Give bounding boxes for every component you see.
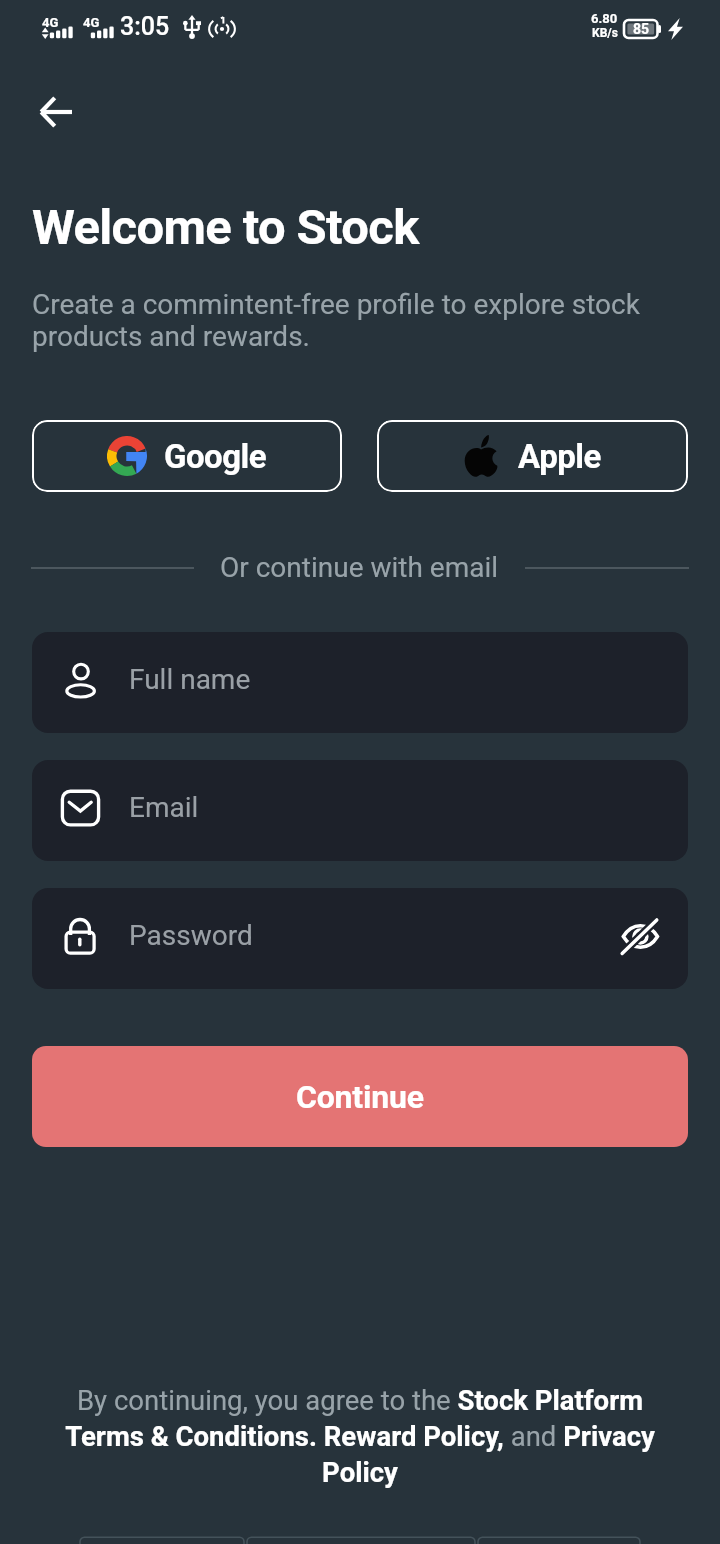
staticText: Password [129, 919, 253, 952]
button[interactable]: Back [24, 80, 88, 144]
button[interactable]: Show password [602, 901, 678, 977]
button[interactable]: Google [32, 420, 342, 492]
staticText: Google [164, 437, 267, 476]
staticText: Welcome to Stock [32, 199, 419, 256]
staticText: 4G [83, 15, 100, 30]
button[interactable]: Password [32, 888, 688, 989]
button[interactable]: Email [32, 760, 688, 861]
button[interactable]: Apple [377, 420, 688, 492]
staticText: Continue [296, 1078, 424, 1116]
staticText: Full name [129, 663, 251, 696]
staticText: KB/s [592, 26, 618, 40]
staticText: Apple [518, 437, 601, 476]
staticText: 6.80 [591, 11, 618, 26]
staticText: By continuing, you agree to the Stock Pl… [52, 1384, 668, 1488]
button[interactable]: Continue [32, 1046, 688, 1147]
button[interactable]: Full name [32, 632, 688, 733]
staticText: 3:05 [120, 12, 170, 41]
staticText: Create a commintent-free profile to expl… [32, 288, 657, 353]
staticText: 4G [42, 15, 59, 30]
staticText: Or continue with email [220, 551, 499, 584]
staticText: Email [129, 791, 199, 824]
staticText: 85 [633, 21, 650, 37]
